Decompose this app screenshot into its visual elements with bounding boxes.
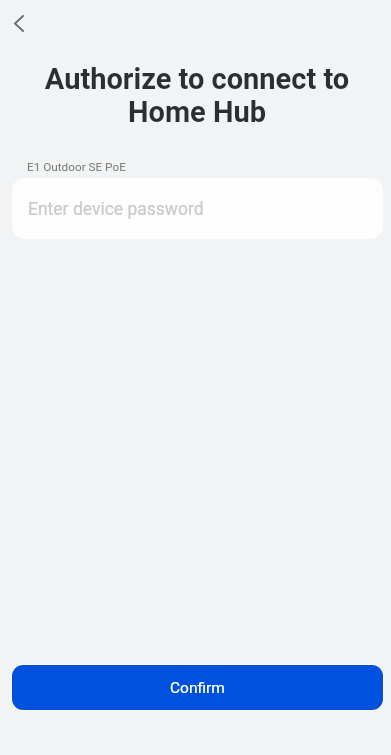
button[interactable]: Back	[1, 5, 37, 41]
staticText: Authorize to connect to Home Hub	[23, 62, 371, 129]
button[interactable]: Enter device password	[12, 178, 383, 239]
staticText: Enter device password	[28, 199, 204, 220]
staticText: E1 Outdoor SE PoE	[27, 160, 126, 174]
button[interactable]: Confirm	[12, 665, 383, 710]
staticText: Confirm	[170, 679, 225, 697]
